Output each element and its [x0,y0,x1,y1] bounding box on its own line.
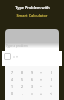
button[interactable]: × [38,76,45,83]
button[interactable]: 1 [9,83,16,90]
button[interactable]: 0 [9,90,16,97]
button[interactable]: = [29,90,36,97]
staticText: Smart Calculator [16,13,48,18]
button[interactable]: 5 [19,76,26,83]
staticText: Type Problem with [15,5,50,10]
staticText: 8 [21,70,24,75]
staticText: 7 [11,70,14,75]
staticText: . [22,91,23,96]
staticText: 2 [21,84,24,89]
button[interactable]: Type a problem [5,29,59,51]
button[interactable]: 3 [29,83,36,90]
staticText: 9 [31,70,34,75]
staticText: ) [51,77,53,82]
button[interactable]: − [38,83,45,90]
staticText: ( [51,70,53,75]
staticText: Type a problem [6,44,28,48]
staticText: 5 [21,77,24,82]
staticText: − [40,84,43,89]
button[interactable]: 8 [19,69,26,76]
button[interactable]: 2 [19,83,26,90]
button[interactable]: Keyboard [4,53,11,60]
staticText: 1 [11,84,14,89]
button[interactable]: + [38,90,45,97]
button[interactable]: ) [48,76,55,83]
staticText: ^ [50,84,53,89]
staticText: × [40,77,43,82]
button[interactable]: < [48,90,55,97]
button[interactable]: ( [48,69,55,76]
staticText: = [31,91,34,96]
button[interactable]: 6 [29,76,36,83]
button[interactable]: ^ [48,83,55,90]
staticText: + [40,91,43,96]
button[interactable]: 9 [29,69,36,76]
button[interactable]: 7 [9,69,16,76]
staticText: < [50,91,53,96]
button[interactable]: ÷ [38,69,45,76]
staticText: 3 [31,84,34,89]
staticText: = × [13,54,18,59]
staticText: ÷ [40,70,43,75]
staticText: 0 [11,91,14,96]
button[interactable]: 4 [9,76,16,83]
staticText: 4 [11,77,14,82]
staticText: 6 [31,77,34,82]
